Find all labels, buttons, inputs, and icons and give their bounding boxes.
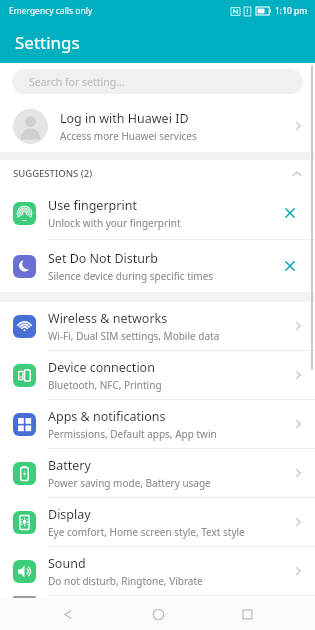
staticText: Settings <box>15 31 80 54</box>
button[interactable]: Dismiss Set Do Not Disturb <box>275 251 305 281</box>
button[interactable]: Log in with Huawei ID <box>0 100 315 152</box>
staticText: Silence device during specific times <box>48 269 214 283</box>
other: Collapse <box>291 168 303 180</box>
button[interactable]: Recents <box>225 598 269 630</box>
button[interactable]: Storage <box>0 596 315 598</box>
button[interactable]: Display <box>0 498 315 546</box>
staticText: Sound <box>48 555 86 572</box>
staticText: Wireless & networks <box>48 310 168 327</box>
staticText: Unlock with your fingerprint <box>48 216 181 230</box>
staticText: Do not disturb, Ringtone, Vibrate <box>48 574 203 588</box>
staticText: Display <box>48 506 91 523</box>
staticText: Wi-Fi, Dual SIM settings, Mobile data <box>48 329 220 343</box>
button[interactable]: Set Do Not Disturb <box>0 240 315 292</box>
staticText: Permissions, Default apps, App twin <box>48 427 217 441</box>
staticText: Eye comfort, Home screen style, Text sty… <box>48 525 245 539</box>
staticText: Log in with Huawei ID <box>60 110 189 127</box>
staticText: Device connection <box>48 359 155 376</box>
staticText: 1:10 pm <box>275 5 308 17</box>
button[interactable]: SUGGESTIONS (2) <box>0 160 315 187</box>
button[interactable]: Dismiss Use fingerprint <box>275 198 305 228</box>
staticText: Access more Huawei services <box>60 129 197 143</box>
button[interactable]: Wireless & networks <box>0 302 315 350</box>
staticText: Apps & notifications <box>48 408 166 425</box>
button[interactable]: Battery <box>0 449 315 497</box>
staticText: SUGGESTIONS (2) <box>13 167 291 180</box>
button[interactable]: Device connection <box>0 351 315 399</box>
staticText: Set Do Not Disturb <box>48 250 158 267</box>
staticText: Bluetooth, NFC, Printing <box>48 378 162 392</box>
staticText: Emergency calls only <box>9 5 93 17</box>
staticText: Search for setting... <box>29 75 125 89</box>
staticText: Battery <box>48 457 91 474</box>
staticText: Use fingerprint <box>48 197 137 214</box>
button[interactable]: Back <box>46 598 90 630</box>
staticText: Power saving mode, Battery usage <box>48 476 211 490</box>
button[interactable]: Use fingerprint <box>0 187 315 239</box>
button[interactable]: Home <box>136 598 180 630</box>
button[interactable]: Apps & notifications <box>0 400 315 448</box>
button[interactable]: Search for setting... <box>12 69 303 94</box>
button[interactable]: Sound <box>0 547 315 595</box>
